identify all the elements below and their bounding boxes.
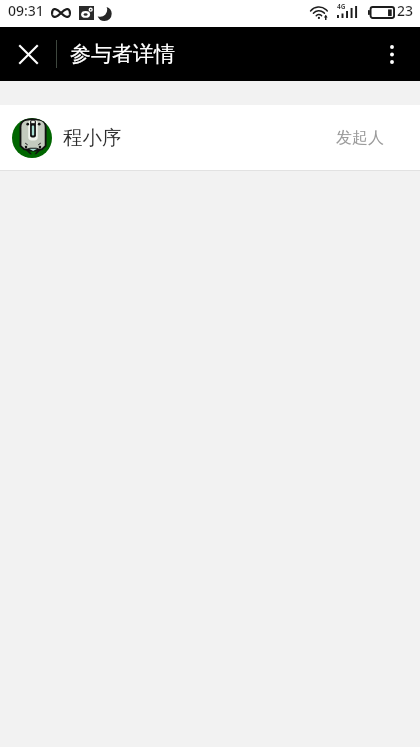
staticText: 参与者详情 xyxy=(70,41,175,67)
staticText: 23 xyxy=(397,1,414,20)
button[interactable]: More options xyxy=(364,27,420,81)
staticText: 发起人 xyxy=(336,128,384,148)
staticText: 程小序 xyxy=(63,125,122,150)
button[interactable]: Close xyxy=(0,27,56,81)
button[interactable]: 程小序 xyxy=(0,105,420,170)
staticText: 09:31 xyxy=(8,1,44,20)
staticText: 4G xyxy=(337,2,346,11)
